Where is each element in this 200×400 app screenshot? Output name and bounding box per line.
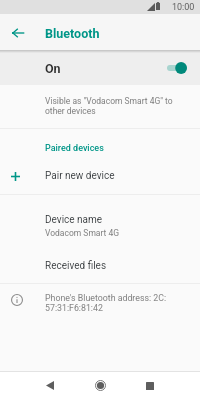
staticText: Phone's Bluetooth address: 2C: 57:31:F6:… [45, 293, 180, 313]
button[interactable]: Recent apps [130, 371, 170, 400]
staticText: Bluetooth [45, 26, 100, 41]
staticText: Visible as "Vodacom Smart 4G" to other d… [45, 96, 175, 116]
staticText: Pair new device [45, 170, 115, 182]
staticText: Vodacom Smart 4G [45, 228, 120, 238]
button[interactable]: Back [30, 371, 70, 400]
staticText: On [45, 61, 61, 76]
button[interactable]: Pair new device [0, 160, 200, 192]
staticText: Paired devices [45, 143, 104, 154]
button[interactable]: On [0, 50, 200, 85]
staticText: Device name [45, 214, 103, 226]
button[interactable]: Home [80, 371, 120, 400]
button[interactable]: Navigate up [6, 21, 29, 44]
button[interactable]: Received files [0, 250, 200, 282]
staticText: Received files [45, 260, 107, 272]
staticText: 10:00 [172, 2, 195, 13]
button[interactable]: Device name [0, 196, 200, 246]
